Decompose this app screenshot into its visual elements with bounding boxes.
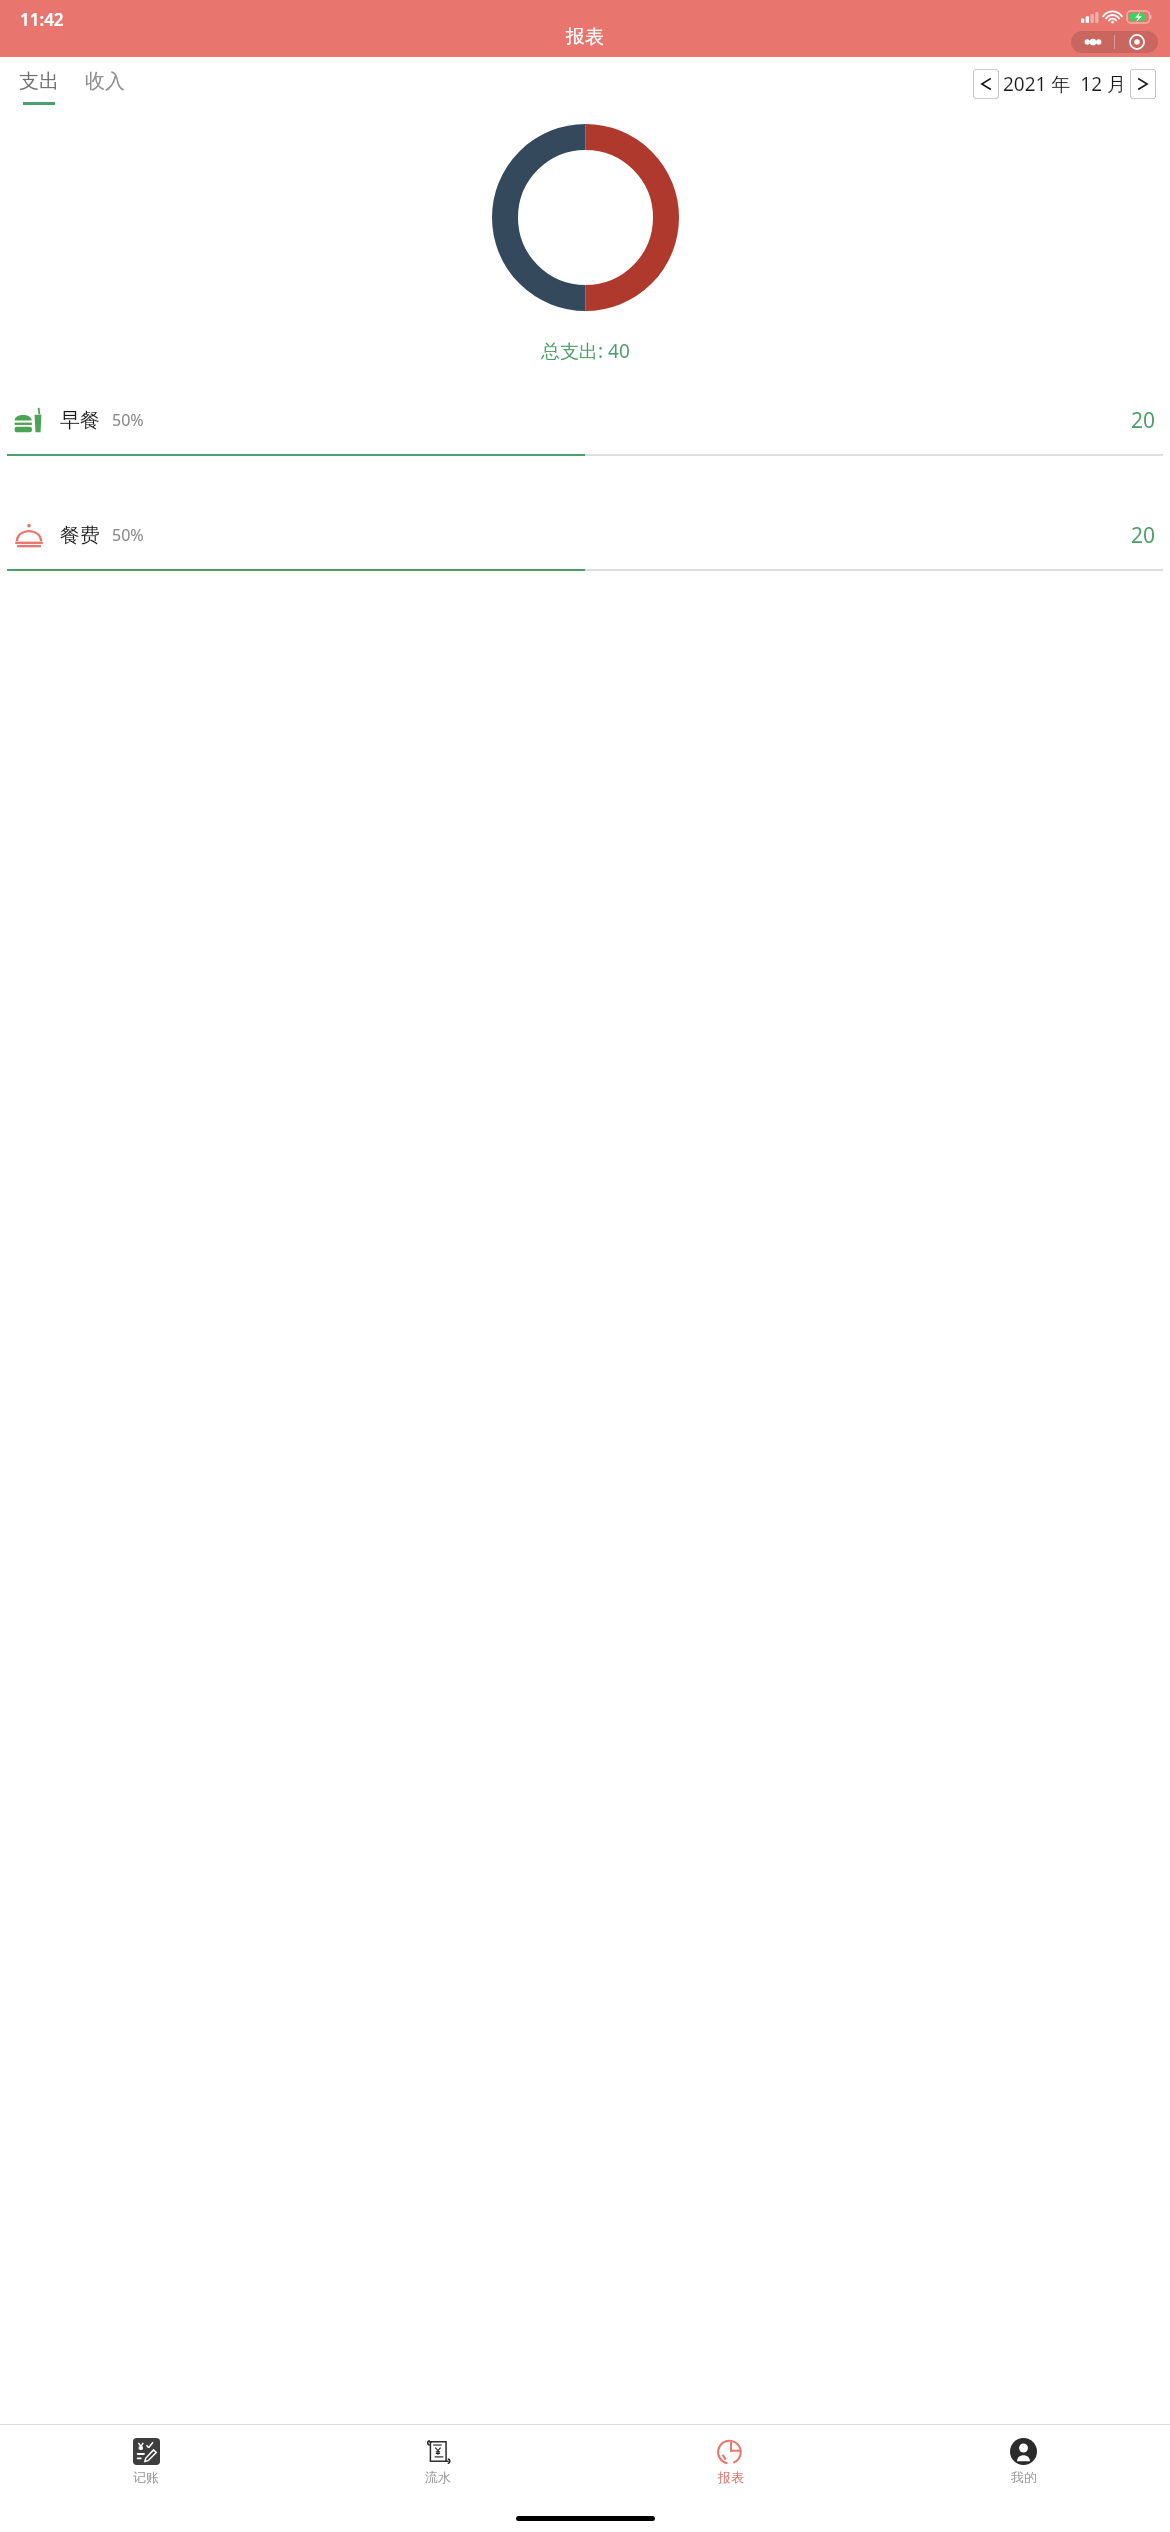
- button[interactable]: 报表: [584, 2425, 877, 2498]
- staticText: 报表: [566, 25, 604, 49]
- staticText: 流水: [425, 2469, 451, 2485]
- button[interactable]: 早餐: [0, 386, 1170, 501]
- staticText: 50%: [112, 409, 144, 431]
- staticText: 我的: [1011, 2469, 1037, 2485]
- staticText: 20: [1131, 521, 1156, 550]
- button[interactable]: 我的: [877, 2425, 1170, 2498]
- staticText: 11:42: [20, 8, 64, 31]
- staticText: 记账: [133, 2469, 159, 2485]
- button[interactable]: Next month: [1130, 69, 1156, 99]
- staticText: 收入: [85, 69, 125, 94]
- button[interactable]: Previous month: [973, 69, 999, 99]
- staticText: 支出: [19, 69, 59, 94]
- button[interactable]: 收入: [72, 57, 138, 110]
- staticText: 50%: [112, 524, 144, 546]
- button[interactable]: 餐费: [0, 501, 1170, 616]
- staticText: 总支出: 40: [541, 338, 630, 364]
- staticText: 报表: [718, 2469, 744, 2485]
- button[interactable]: More and close: [1071, 31, 1158, 53]
- button[interactable]: 支出: [6, 57, 72, 110]
- staticText: 20: [1131, 406, 1156, 435]
- staticText: 餐费: [60, 523, 100, 548]
- staticText: 早餐: [60, 408, 100, 433]
- staticText: 2021 年 12 月: [1003, 71, 1126, 97]
- button[interactable]: 流水: [292, 2425, 584, 2498]
- button[interactable]: 记账: [0, 2425, 292, 2498]
